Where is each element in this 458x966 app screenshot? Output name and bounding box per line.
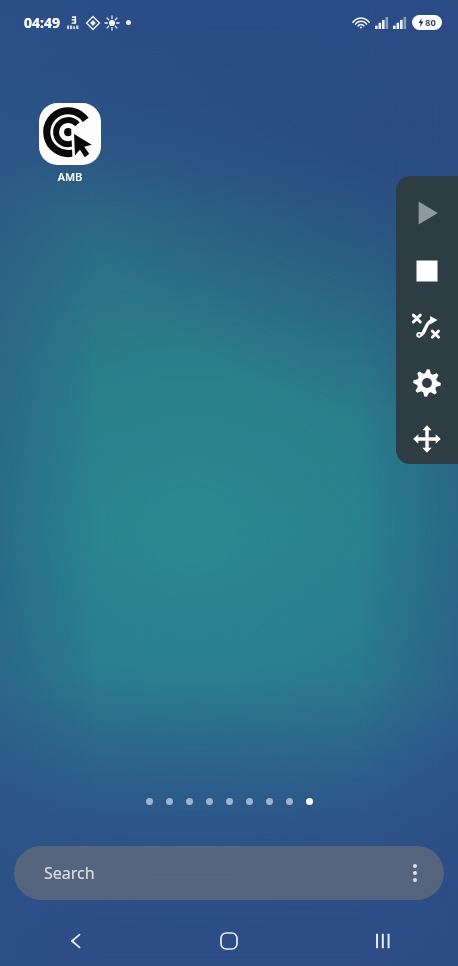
button[interactable]: Back <box>0 916 152 966</box>
staticText: AMB <box>30 169 110 184</box>
button[interactable]: Recent apps <box>305 916 458 966</box>
button[interactable]: Settings <box>403 362 451 404</box>
button[interactable]: Stop <box>403 250 451 292</box>
button[interactable]: Home <box>152 916 305 966</box>
button[interactable]: AMB <box>30 103 110 184</box>
staticText: 04:49 <box>24 13 60 32</box>
staticText: Search <box>44 862 95 884</box>
button[interactable]: Search <box>14 846 444 900</box>
staticText: 80 <box>425 16 436 29</box>
button[interactable]: Play <box>403 192 451 234</box>
button[interactable]: Record path <box>403 306 451 348</box>
button[interactable]: Move <box>403 418 451 460</box>
button[interactable]: More options <box>398 856 432 890</box>
